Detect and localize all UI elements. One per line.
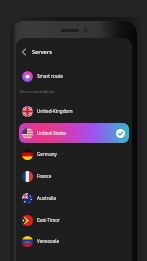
button[interactable]: United-Kingdom [19,101,129,121]
button[interactable]: France [19,166,129,186]
staticText: Venezuela [37,238,59,244]
staticText: United-Kingdom [37,108,73,114]
button[interactable]: East-Timor [19,210,129,230]
button[interactable]: Australia [19,188,129,208]
staticText: Smart route [37,73,63,79]
button[interactable]: Germany [19,144,129,164]
staticText: Servers [32,48,52,56]
button[interactable]: Back [16,43,132,60]
staticText: Germany [37,151,57,157]
button[interactable]: United-States [19,123,129,143]
button[interactable]: Venezuela [19,231,129,251]
staticText: Recommendative [20,89,55,95]
staticText: Australia [37,195,56,201]
button[interactable]: Smart route [19,66,129,86]
staticText: East-Timor [37,217,60,223]
button[interactable]: Back [19,47,29,57]
staticText: France [37,173,52,179]
staticText: United-States [37,130,67,136]
